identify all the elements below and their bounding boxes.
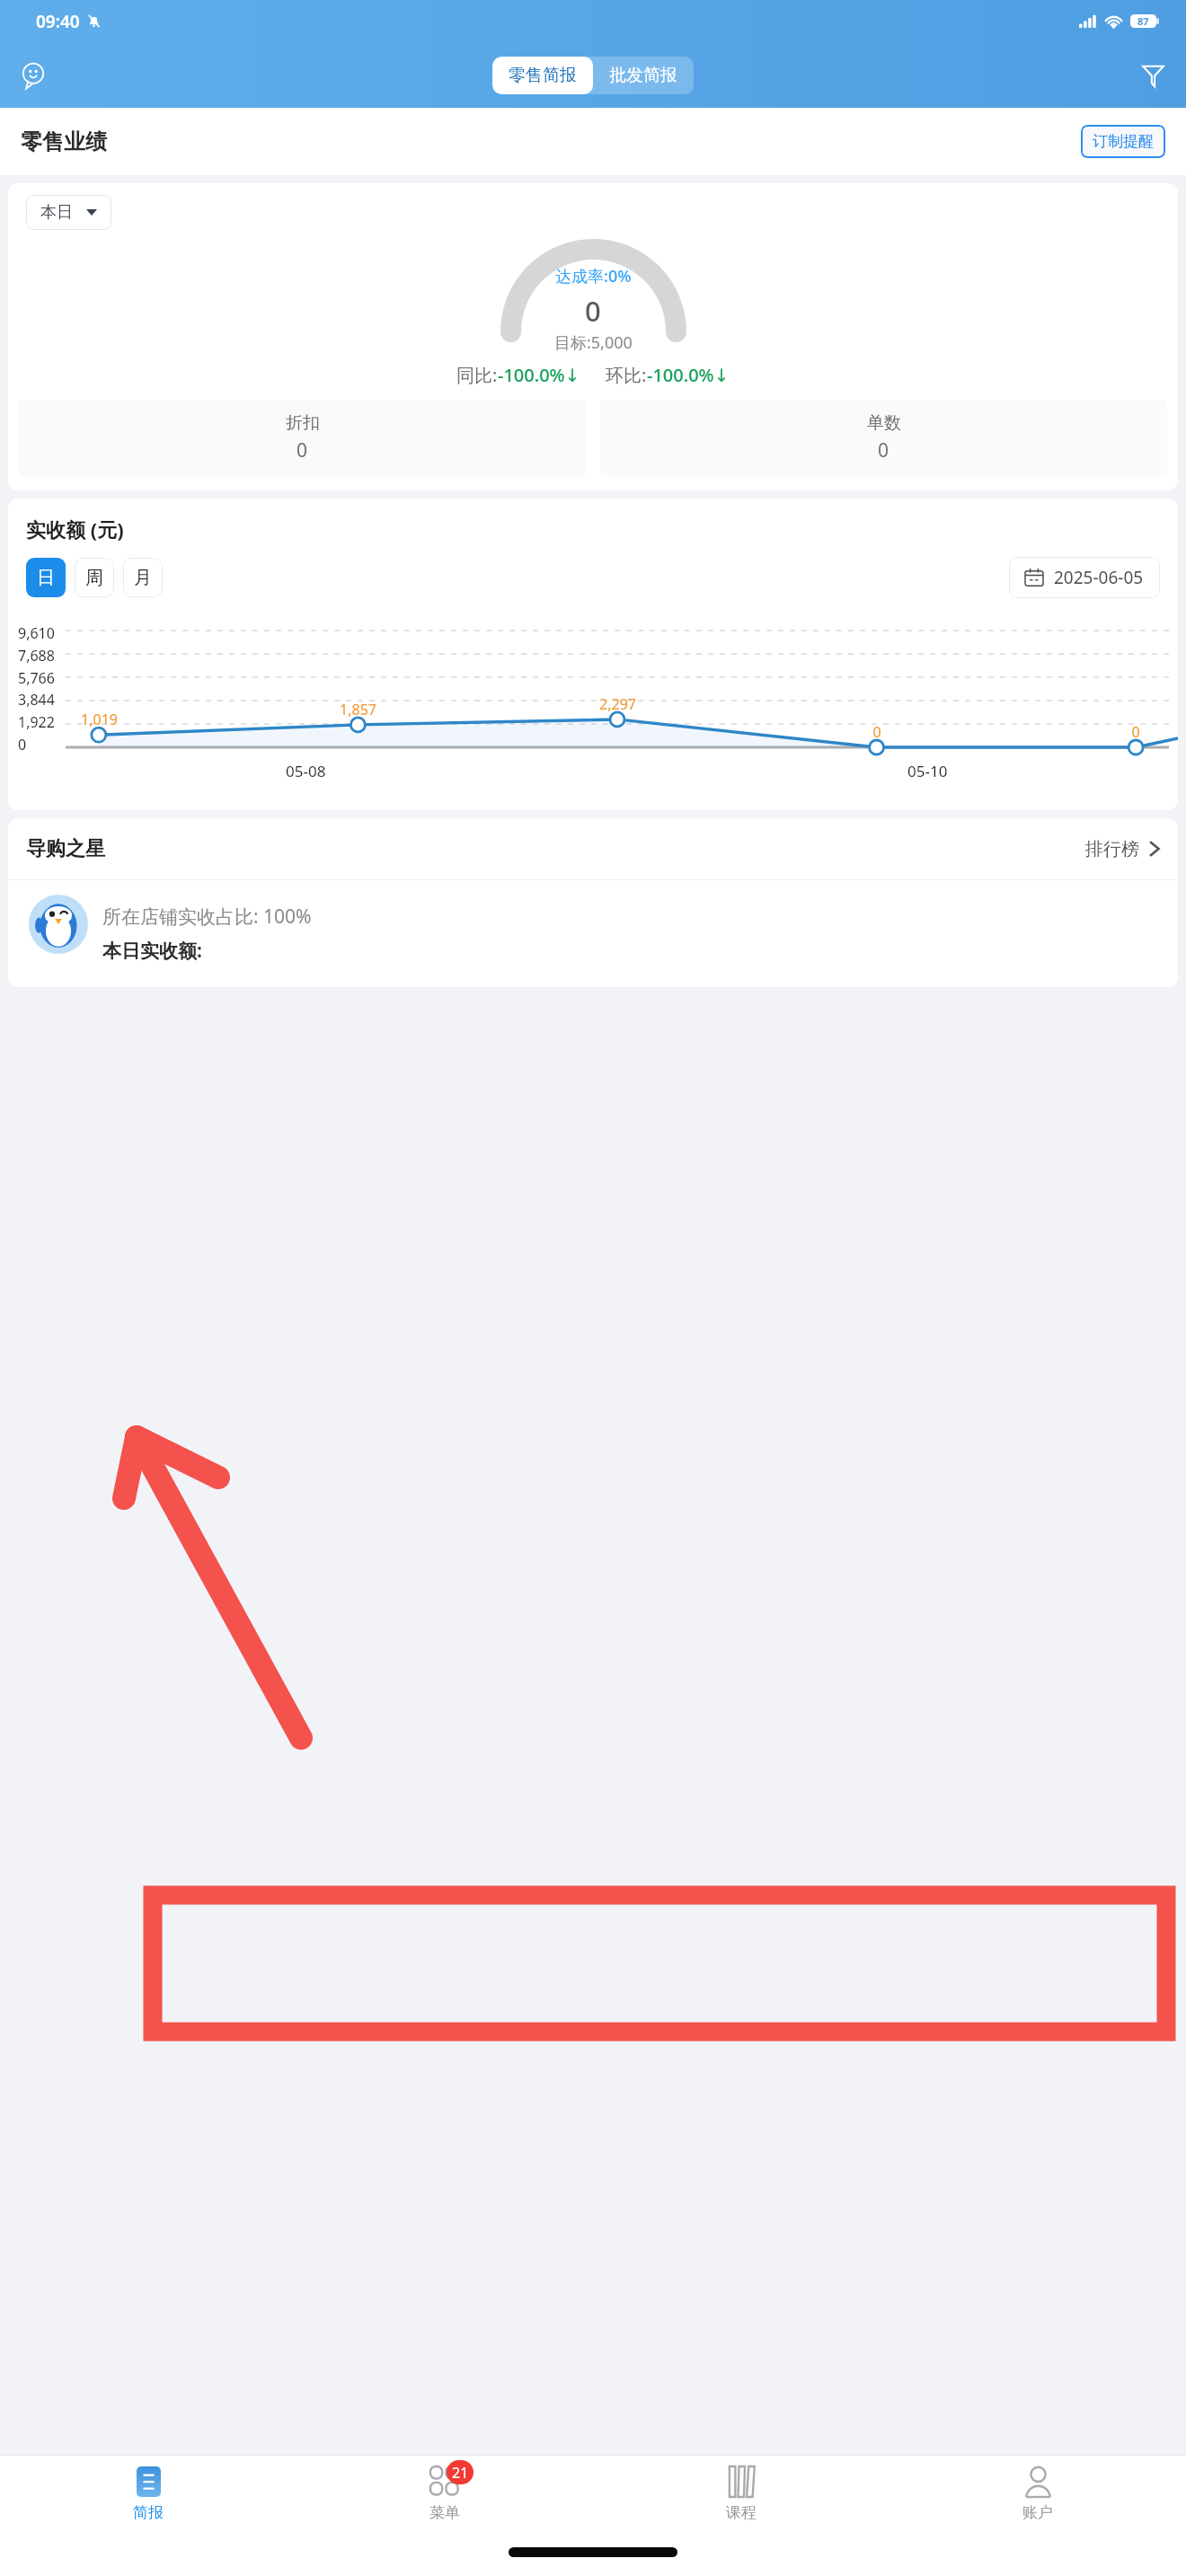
staticText: 批发简报 — [609, 65, 677, 86]
button[interactable]: Chat — [14, 57, 52, 94]
staticText: 折扣 — [286, 412, 320, 434]
staticText: 21 — [452, 2463, 469, 2483]
button[interactable]: 零售简报 — [492, 57, 593, 94]
button[interactable]: 账户 — [889, 2456, 1186, 2533]
staticText: 零售简报 — [509, 65, 577, 86]
button[interactable]: 日 — [26, 558, 66, 597]
button[interactable]: 单数 — [600, 400, 1167, 476]
staticText: 周 — [85, 567, 103, 589]
staticText: 账户 — [1022, 2503, 1053, 2522]
staticText: 0 — [296, 437, 308, 463]
staticText: 0 — [585, 292, 601, 330]
staticText: 09:40 — [36, 10, 80, 33]
staticText: 7,688 — [18, 646, 55, 666]
staticText: 达成率:0% — [555, 265, 632, 287]
staticText: 0 — [18, 735, 27, 754]
staticText: 2025-06-05 — [1054, 566, 1144, 589]
staticText: 5,766 — [18, 668, 55, 688]
staticText: 导购之星 — [26, 836, 105, 861]
button[interactable]: 本日 — [26, 195, 111, 230]
button[interactable]: 折扣 — [19, 400, 586, 476]
staticText: -100.0%↓ — [498, 363, 580, 387]
staticText: 菜单 — [429, 2503, 460, 2522]
staticText: 3,844 — [18, 690, 55, 710]
staticText: 实收额 (元) — [26, 516, 124, 543]
button[interactable]: Filter — [1134, 57, 1172, 94]
button[interactable]: 简报 — [0, 2456, 296, 2533]
staticText: 订制提醒 — [1093, 132, 1154, 151]
staticText: 排行榜 — [1085, 838, 1139, 860]
staticText: 0 — [1131, 722, 1140, 742]
staticText: 零售业绩 — [21, 128, 107, 155]
staticText: 同比: — [456, 363, 498, 387]
staticText: 0 — [878, 437, 889, 463]
staticText: 9,610 — [18, 623, 55, 643]
button[interactable]: 周 — [75, 558, 114, 597]
staticText: 1,857 — [340, 700, 376, 719]
staticText: 所在店铺实收占比: 100% — [102, 904, 312, 930]
staticText: 环比: — [606, 363, 647, 387]
staticText: 日 — [37, 567, 55, 589]
staticText: 课程 — [726, 2503, 757, 2522]
staticText: -100.0%↓ — [647, 363, 730, 387]
button[interactable]: 月 — [123, 558, 163, 597]
staticText: 单数 — [867, 412, 901, 434]
staticText: 05-10 — [907, 761, 948, 781]
button[interactable]: 导购之星 — [8, 818, 1178, 879]
staticText: 2,297 — [599, 694, 636, 714]
staticText: 87 — [1137, 14, 1149, 28]
button[interactable]: 课程 — [593, 2456, 889, 2533]
staticText: 本日实收额: — [102, 938, 202, 964]
staticText: 月 — [134, 567, 152, 589]
button[interactable]: 2025-06-05 — [1009, 557, 1160, 598]
staticText: 05-08 — [286, 761, 326, 781]
button[interactable]: 批发简报 — [593, 57, 694, 94]
button[interactable]: 订制提醒 — [1081, 125, 1165, 158]
staticText: 1,019 — [81, 710, 118, 729]
staticText: 1,922 — [18, 712, 55, 732]
staticText: 简报 — [133, 2503, 164, 2522]
staticText: 目标:5,000 — [554, 331, 633, 352]
staticText: 0 — [872, 722, 881, 742]
staticText: 本日 — [40, 202, 73, 223]
button[interactable]: 21 — [296, 2456, 593, 2533]
